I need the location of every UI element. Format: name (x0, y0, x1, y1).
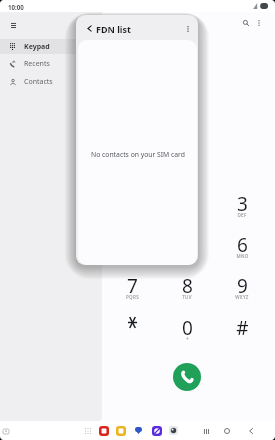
button[interactable]: 3 (220, 187, 264, 221)
staticText: # (236, 315, 249, 341)
button[interactable]: Office (98, 425, 109, 436)
button[interactable]: 9 (220, 269, 264, 303)
button[interactable]: 2 (165, 187, 209, 221)
button[interactable]: 7 (110, 269, 154, 303)
button[interactable]: Files (115, 425, 126, 436)
button[interactable] (110, 311, 154, 345)
button[interactable]: 8 (165, 269, 209, 303)
staticText: Contacts (24, 77, 53, 87)
staticText: 3 (237, 191, 248, 217)
staticText: Keypad (24, 42, 50, 52)
staticText: 10:00 (8, 3, 24, 11)
staticText: WXYZ (235, 294, 249, 300)
button[interactable]: More options (253, 17, 265, 29)
button[interactable]: 5 (165, 228, 209, 262)
button[interactable]: Call (173, 363, 201, 391)
button[interactable]: Browser (151, 425, 162, 436)
staticText: 8 (182, 273, 193, 299)
staticText: 0 (182, 315, 193, 341)
button[interactable]: Home (222, 426, 232, 436)
staticText: No contacts on your SIM card (91, 150, 185, 159)
button[interactable]: Back (85, 24, 93, 32)
staticText: 9 (237, 273, 248, 299)
staticText: TUV (182, 294, 192, 300)
button[interactable]: 6 (220, 228, 264, 262)
button[interactable]: Back (246, 426, 256, 436)
button[interactable]: Keypad (0, 39, 102, 54)
staticText: Recents (24, 59, 50, 69)
button[interactable]: Screen options (1, 426, 11, 436)
button[interactable]: Camera (168, 425, 179, 436)
staticText: 6 (237, 232, 248, 258)
button[interactable]: Recent apps (201, 426, 211, 436)
staticText: FDN list (96, 23, 131, 35)
button[interactable]: Messages (133, 425, 144, 436)
button[interactable]: All apps (83, 426, 93, 436)
staticText: 7 (127, 273, 138, 299)
staticText: PQRS (126, 294, 139, 300)
button[interactable]: Dialog menu (183, 24, 192, 33)
button[interactable]: Menu (5, 17, 21, 33)
staticText: MNO (236, 253, 249, 259)
button[interactable]: Search (240, 17, 252, 29)
button[interactable]: # (220, 311, 264, 345)
staticText: DEF (237, 212, 247, 218)
staticText: + (186, 336, 189, 342)
button[interactable]: Contacts (0, 74, 102, 89)
button[interactable]: Recents (0, 56, 102, 71)
button[interactable]: 0 (165, 311, 209, 345)
